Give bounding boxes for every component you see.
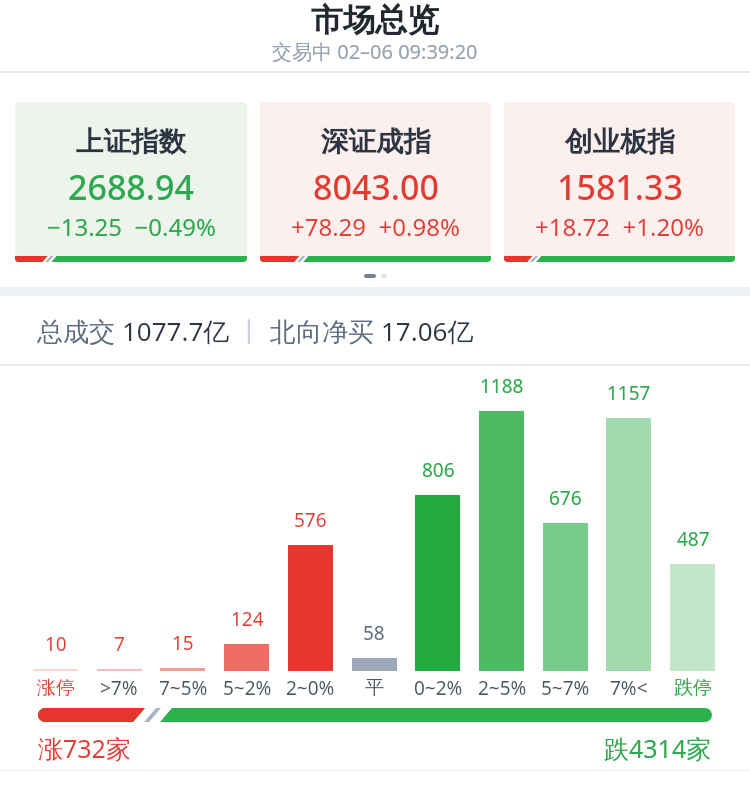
staticText: 7: [114, 631, 125, 657]
staticText: 2~0%: [286, 675, 335, 701]
button[interactable]: 深证成指: [260, 102, 491, 262]
staticText: +18.72 +1.20%: [535, 210, 704, 238]
staticText: 交易中 02–06 09:39:20: [272, 38, 478, 62]
staticText: 487: [677, 526, 710, 552]
button[interactable]: 总成交: [37, 313, 474, 349]
button[interactable]: [38, 708, 712, 722]
staticText: 15: [172, 630, 194, 656]
staticText: −13.25 −0.49%: [47, 210, 216, 238]
staticText: 总成交: [37, 313, 122, 349]
staticText: 576: [294, 507, 327, 533]
staticText: 10: [45, 631, 67, 657]
staticText: 北向净买: [270, 313, 381, 349]
staticText: 2688.94: [68, 164, 194, 210]
staticText: 124: [231, 606, 264, 632]
staticText: 676: [549, 485, 582, 511]
staticText: 深证成指: [321, 125, 431, 160]
staticText: 0~2%: [414, 675, 463, 701]
staticText: 5~2%: [223, 675, 272, 701]
staticText: 1188: [480, 373, 524, 399]
button[interactable]: 上证指数: [15, 102, 247, 262]
staticText: +78.29 +0.98%: [291, 210, 460, 238]
staticText: 1077.7亿: [122, 313, 230, 349]
staticText: 丨: [230, 313, 270, 349]
staticText: 涨732家: [38, 731, 131, 765]
staticText: 平: [365, 676, 384, 700]
staticText: 58: [363, 620, 385, 646]
staticText: 市场总览: [311, 0, 439, 36]
staticText: >7%: [100, 675, 138, 701]
staticText: 7%<: [610, 675, 648, 701]
staticText: 1157: [607, 380, 651, 406]
staticText: 8043.00: [313, 164, 439, 210]
staticText: 806: [422, 457, 455, 483]
staticText: 上证指数: [76, 125, 186, 160]
staticText: 涨停: [37, 676, 75, 700]
staticText: 2~5%: [478, 675, 527, 701]
staticText: 跌4314家: [604, 731, 712, 765]
staticText: 7~5%: [159, 675, 208, 701]
staticText: 跌停: [674, 676, 712, 700]
staticText: 17.06亿: [381, 313, 474, 349]
staticText: 1581.33: [557, 164, 683, 210]
staticText: 创业板指: [565, 125, 675, 160]
button[interactable]: 创业板指: [504, 102, 735, 262]
staticText: 5~7%: [541, 675, 590, 701]
